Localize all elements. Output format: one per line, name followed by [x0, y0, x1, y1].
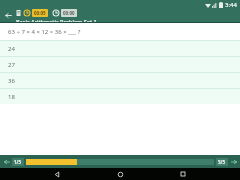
button[interactable]: Back: [0, 9, 16, 22]
button[interactable]: 27: [0, 57, 240, 72]
staticText: 3:44: [225, 1, 237, 9]
button[interactable]: Back: [51, 168, 63, 180]
button[interactable]: 00:00: [53, 9, 77, 17]
staticText: 18: [8, 93, 15, 101]
button[interactable]: 36: [0, 73, 240, 88]
staticText: 36: [8, 77, 15, 85]
button[interactable]: Next question: [229, 157, 238, 166]
button[interactable]: 18: [0, 89, 240, 104]
staticText: 63 ÷ 7 × 4 × 12 = 36 × ___ ?: [8, 28, 81, 36]
button[interactable]: Recent apps: [177, 168, 189, 180]
staticText: 24: [8, 45, 15, 53]
staticText: 00:05: [34, 10, 46, 16]
staticText: 5/5: [218, 159, 226, 165]
button[interactable]: Home: [114, 168, 126, 180]
staticText: 00:00: [63, 10, 75, 16]
button[interactable]: 24: [0, 41, 240, 56]
staticText: 1/5: [14, 159, 22, 165]
staticText: 27: [8, 61, 15, 69]
button[interactable]: Previous question: [2, 157, 11, 166]
staticText: Basic Arithmetic Problem Set 1: [16, 18, 97, 22]
button[interactable]: 00:05: [24, 9, 48, 17]
